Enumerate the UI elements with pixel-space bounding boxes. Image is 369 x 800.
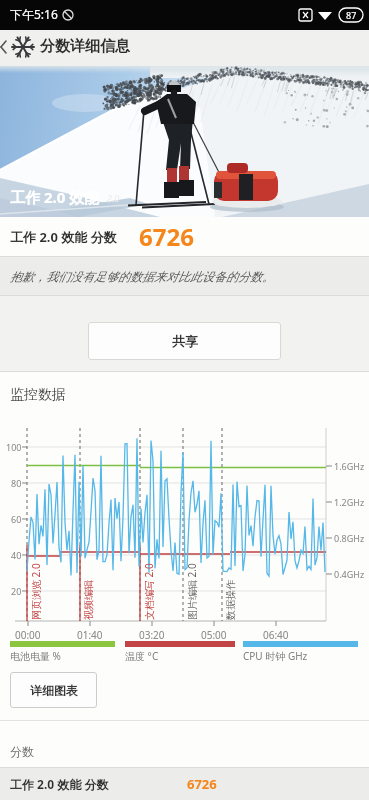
- staticText: 电池电量 %: [10, 649, 61, 663]
- staticText: 工作 2.0 效能: [10, 187, 100, 207]
- staticText: 共享: [172, 333, 198, 349]
- staticText: 工作 2.0 效能 分数: [10, 228, 117, 246]
- staticText: 工作 2.0 效能 分数: [10, 776, 109, 792]
- staticText: 分数详细信息: [40, 37, 130, 56]
- staticText: 87: [346, 9, 357, 21]
- staticText: 分数: [10, 744, 34, 759]
- staticText: 抱歉，我们没有足够的数据来对比此设备的分数。: [10, 269, 274, 284]
- staticText: 6726: [139, 220, 194, 253]
- staticText: 2.0: [107, 192, 120, 204]
- staticText: 详细图表: [30, 683, 78, 698]
- staticText: 6726: [187, 775, 217, 793]
- staticText: 温度 °C: [125, 649, 159, 663]
- staticText: 下午5:16: [10, 6, 58, 22]
- staticText: CPU 时钟 GHz: [243, 649, 308, 663]
- staticText: 监控数据: [10, 386, 66, 404]
